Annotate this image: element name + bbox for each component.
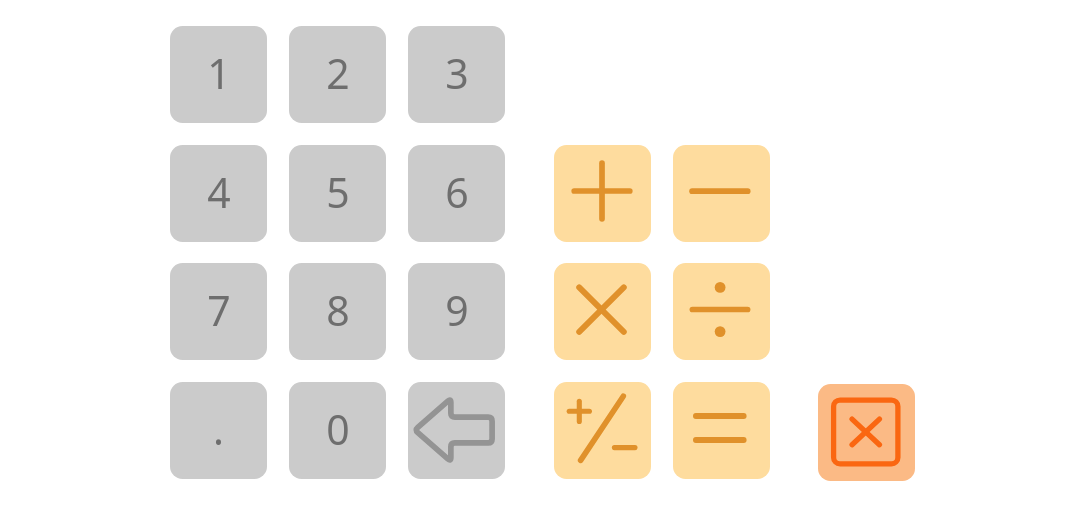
button[interactable]: 8 [289,263,386,360]
button[interactable]: Clear [818,384,915,481]
button[interactable]: 7 [170,263,267,360]
staticText: 7 [207,282,231,338]
button[interactable]: 2 [289,26,386,123]
staticText: 3 [445,45,469,101]
button[interactable]: Plus [554,145,651,242]
button[interactable]: 3 [408,26,505,123]
button[interactable]: Plus or minus [554,382,651,479]
staticText: 9 [445,282,469,338]
button[interactable]: 4 [170,145,267,242]
button[interactable]: 6 [408,145,505,242]
button[interactable]: Divide [673,263,770,360]
staticText: 5 [326,164,350,220]
button[interactable]: 5 [289,145,386,242]
staticText: 0 [326,401,350,457]
button[interactable]: Backspace [408,382,505,479]
staticText: . [213,401,224,457]
button[interactable]: Minus [673,145,770,242]
staticText: 6 [445,164,469,220]
staticText: 1 [207,45,231,101]
button[interactable]: 0 [289,382,386,479]
staticText: 8 [326,282,350,338]
staticText: 4 [207,164,231,220]
button[interactable]: Decimal point [170,382,267,479]
staticText: 2 [326,45,350,101]
button[interactable]: 1 [170,26,267,123]
button[interactable]: Equals [673,382,770,479]
button[interactable]: 9 [408,263,505,360]
button[interactable]: Multiply [554,263,651,360]
